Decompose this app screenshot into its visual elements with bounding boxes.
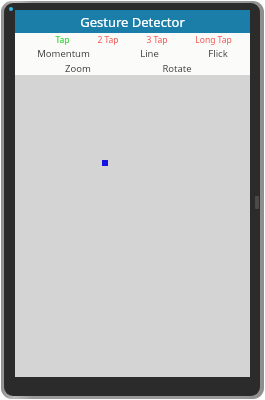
button[interactable]: Tap <box>55 34 70 46</box>
button[interactable] <box>15 75 250 377</box>
staticText: Gesture Detector <box>80 13 185 31</box>
button[interactable]: 2 Tap <box>97 34 119 46</box>
button[interactable]: 3 Tap <box>146 34 168 46</box>
button[interactable]: Long Tap <box>195 34 232 46</box>
button[interactable]: Zoom <box>65 62 91 75</box>
button[interactable]: Momentum <box>37 47 90 60</box>
button[interactable]: Flick <box>208 47 228 60</box>
button[interactable]: Rotate <box>162 62 192 75</box>
button[interactable]: Line <box>140 47 159 60</box>
